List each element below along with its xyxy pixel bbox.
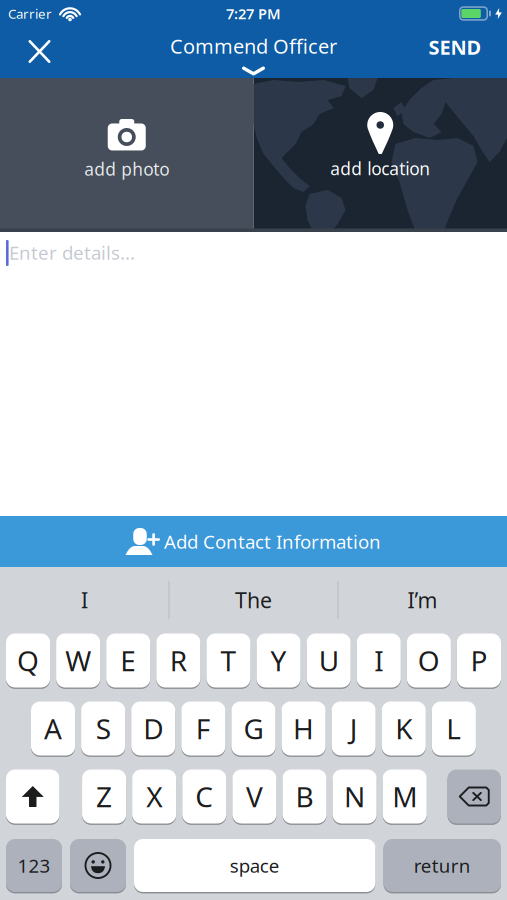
button[interactable]: O bbox=[407, 632, 451, 688]
button[interactable]: K bbox=[382, 700, 426, 756]
button[interactable]: E bbox=[106, 632, 150, 688]
button[interactable]: J bbox=[332, 700, 376, 756]
staticText: W bbox=[65, 642, 91, 679]
button[interactable]: F bbox=[181, 700, 225, 756]
staticText: add location bbox=[330, 157, 430, 180]
button[interactable]: I’m bbox=[342, 578, 502, 622]
button[interactable]: Numbers bbox=[6, 838, 62, 893]
button[interactable]: I bbox=[4, 578, 164, 622]
button[interactable]: Emoji bbox=[70, 838, 126, 893]
button[interactable]: SEND bbox=[422, 24, 487, 70]
staticText: Enter details... bbox=[9, 240, 135, 265]
button[interactable]: D bbox=[131, 700, 175, 756]
staticText: T bbox=[220, 642, 236, 679]
staticText: A bbox=[44, 710, 62, 747]
staticText: return bbox=[414, 853, 471, 878]
staticText: space bbox=[230, 853, 280, 878]
button[interactable]: A bbox=[31, 700, 75, 756]
staticText: J bbox=[350, 710, 358, 747]
button[interactable]: Commend Officer bbox=[153, 27, 353, 78]
staticText: E bbox=[120, 642, 136, 679]
staticText: H bbox=[293, 710, 314, 747]
button[interactable]: L bbox=[432, 700, 476, 756]
staticText: B bbox=[295, 778, 313, 815]
button[interactable]: R bbox=[156, 632, 200, 688]
staticText: I’m bbox=[407, 586, 437, 614]
button[interactable]: N bbox=[333, 768, 377, 824]
staticText: Z bbox=[96, 778, 112, 815]
staticText: X bbox=[146, 778, 162, 815]
button[interactable]: Close bbox=[15, 26, 64, 76]
button[interactable]: Shift bbox=[6, 768, 59, 824]
staticText: The bbox=[235, 586, 272, 614]
staticText: M bbox=[392, 778, 417, 815]
button[interactable]: I bbox=[357, 632, 401, 688]
button[interactable]: T bbox=[206, 632, 250, 688]
staticText: F bbox=[196, 710, 211, 747]
button[interactable]: return bbox=[383, 838, 501, 893]
staticText: V bbox=[246, 778, 263, 815]
staticText: K bbox=[395, 710, 412, 747]
button[interactable]: B bbox=[282, 768, 326, 824]
button[interactable]: P bbox=[457, 632, 501, 688]
button[interactable]: G bbox=[231, 700, 275, 756]
button[interactable]: S bbox=[81, 700, 125, 756]
staticText: Carrier bbox=[8, 5, 52, 22]
staticText: SEND bbox=[428, 34, 481, 60]
button[interactable]: Q bbox=[6, 632, 50, 688]
button[interactable]: V bbox=[232, 768, 276, 824]
staticText: Commend Officer bbox=[170, 33, 337, 59]
staticText: L bbox=[446, 710, 461, 747]
button[interactable]: add photo bbox=[0, 78, 253, 232]
button[interactable]: W bbox=[56, 632, 100, 688]
staticText: R bbox=[170, 642, 187, 679]
button[interactable]: add location bbox=[253, 78, 507, 232]
staticText: O bbox=[418, 642, 440, 679]
staticText: G bbox=[243, 710, 263, 747]
button[interactable]: Y bbox=[256, 632, 301, 688]
button[interactable]: Z bbox=[82, 768, 126, 824]
staticText: S bbox=[96, 710, 111, 747]
button[interactable]: C bbox=[182, 768, 226, 824]
staticText: D bbox=[143, 710, 163, 747]
staticText: add photo bbox=[84, 157, 169, 180]
staticText: Y bbox=[271, 642, 287, 679]
button[interactable]: H bbox=[281, 700, 326, 756]
button[interactable]: Delete bbox=[447, 768, 501, 824]
button[interactable]: The bbox=[173, 578, 333, 622]
staticText: Add Contact Information bbox=[164, 529, 381, 554]
staticText: N bbox=[344, 778, 365, 815]
button[interactable]: U bbox=[307, 632, 351, 688]
button[interactable]: M bbox=[383, 768, 427, 824]
button[interactable]: X bbox=[132, 768, 176, 824]
button[interactable]: Add Contact Information bbox=[0, 516, 507, 567]
staticText: Q bbox=[17, 642, 39, 679]
staticText: 7:27 PM bbox=[226, 4, 281, 23]
staticText: C bbox=[195, 778, 213, 815]
staticText: P bbox=[470, 642, 487, 679]
staticText: I bbox=[81, 586, 88, 614]
staticText: I bbox=[374, 642, 383, 679]
staticText: U bbox=[319, 642, 339, 679]
button[interactable]: space bbox=[134, 838, 375, 893]
staticText: 123 bbox=[17, 853, 50, 878]
